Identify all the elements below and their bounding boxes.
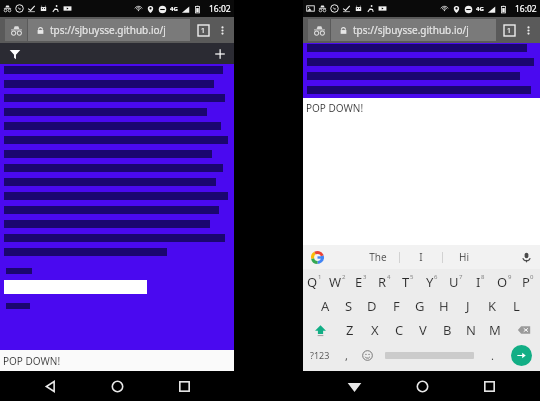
button[interactable]: I bbox=[400, 245, 442, 269]
staticText: N bbox=[466, 321, 476, 339]
staticText: 9 bbox=[508, 273, 512, 281]
button[interactable]: N bbox=[459, 318, 483, 342]
button[interactable]: Hide keyboard bbox=[337, 371, 371, 401]
staticText: 4G bbox=[476, 5, 484, 13]
staticText: V bbox=[419, 321, 427, 339]
button[interactable]: Home bbox=[405, 371, 439, 401]
staticText: E bbox=[355, 273, 363, 291]
button[interactable]: . bbox=[481, 342, 503, 368]
button[interactable]: G bbox=[408, 294, 432, 318]
button[interactable]: T bbox=[396, 269, 420, 294]
staticText: D bbox=[367, 297, 377, 315]
staticText: I bbox=[419, 250, 423, 264]
button[interactable]: H bbox=[432, 294, 456, 318]
staticText: Hi bbox=[459, 250, 469, 264]
staticText: POP DOWN! bbox=[306, 101, 364, 115]
button[interactable]: Back bbox=[33, 371, 67, 401]
staticText: Z bbox=[346, 321, 354, 339]
staticText: S bbox=[345, 297, 353, 315]
button[interactable]: E bbox=[349, 269, 372, 294]
button[interactable]: Emoji bbox=[356, 342, 378, 368]
button[interactable]: POP DOWN! bbox=[0, 350, 234, 371]
button[interactable]: W bbox=[326, 269, 349, 294]
button[interactable]: Google bbox=[309, 249, 325, 265]
staticText: U bbox=[449, 273, 459, 291]
button[interactable]: Shift bbox=[303, 318, 337, 342]
button[interactable]: Tabs bbox=[193, 20, 213, 40]
staticText: 16:02 bbox=[209, 3, 231, 15]
button[interactable]: K bbox=[480, 294, 504, 318]
staticText: 5 bbox=[410, 273, 414, 281]
staticText: 2 bbox=[342, 273, 346, 281]
staticText: B bbox=[443, 321, 452, 339]
button[interactable]: Add bbox=[211, 45, 228, 62]
button[interactable]: F bbox=[384, 294, 408, 318]
button[interactable]: B bbox=[435, 318, 459, 342]
staticText: 8 bbox=[481, 273, 485, 281]
staticText: K bbox=[488, 297, 497, 315]
staticText: Y bbox=[426, 273, 434, 291]
staticText: . bbox=[491, 348, 494, 363]
staticText: A bbox=[321, 297, 330, 315]
button[interactable]: Incognito bbox=[5, 19, 27, 41]
staticText: 4G bbox=[170, 5, 178, 13]
button[interactable]: I bbox=[468, 269, 492, 294]
button[interactable]: Recent apps bbox=[167, 371, 201, 401]
button[interactable]: M bbox=[483, 318, 507, 342]
staticText: 3 bbox=[363, 273, 367, 281]
button[interactable]: More options bbox=[519, 21, 537, 39]
button[interactable]: U bbox=[444, 269, 468, 294]
staticText: W bbox=[329, 273, 342, 291]
button[interactable]: L bbox=[504, 294, 528, 318]
button[interactable]: C bbox=[387, 318, 411, 342]
button[interactable]: P bbox=[516, 269, 540, 294]
staticText: P bbox=[522, 273, 530, 291]
button[interactable]: R bbox=[372, 269, 396, 294]
button[interactable]: Filter bbox=[6, 45, 23, 62]
button[interactable]: More options bbox=[213, 21, 231, 39]
button[interactable]: V bbox=[411, 318, 435, 342]
button[interactable]: Z bbox=[337, 318, 362, 342]
staticText: I bbox=[476, 273, 481, 291]
staticText: ?123 bbox=[310, 349, 330, 361]
button[interactable]: D bbox=[360, 294, 384, 318]
staticText: 6 bbox=[434, 273, 438, 281]
staticText: R bbox=[378, 273, 387, 291]
staticText: O bbox=[497, 273, 508, 291]
button[interactable]: Tabs bbox=[499, 20, 519, 40]
staticText: L bbox=[513, 297, 520, 315]
button[interactable]: tps://sjbuysse.github.io/j bbox=[331, 19, 496, 41]
staticText: The bbox=[369, 250, 387, 264]
button[interactable]: Q bbox=[303, 269, 326, 294]
button[interactable]: Space bbox=[378, 342, 481, 368]
staticText: 1 bbox=[507, 26, 512, 36]
staticText: 1 bbox=[201, 26, 206, 36]
staticText: F bbox=[393, 297, 400, 315]
button[interactable]: Y bbox=[420, 269, 444, 294]
button[interactable]: Voice input bbox=[518, 249, 534, 265]
button[interactable]: J bbox=[456, 294, 480, 318]
button[interactable]: Hi bbox=[443, 245, 485, 269]
button[interactable]: S bbox=[337, 294, 360, 318]
button[interactable]: POP DOWN! bbox=[303, 98, 540, 118]
button[interactable]: A bbox=[314, 294, 337, 318]
staticText: C bbox=[395, 321, 404, 339]
button[interactable]: ?123 bbox=[303, 342, 336, 368]
staticText: X bbox=[371, 321, 379, 339]
button[interactable]: Home bbox=[100, 371, 134, 401]
button[interactable]: Incognito bbox=[308, 19, 330, 41]
button[interactable]: O bbox=[492, 269, 516, 294]
button[interactable]: X bbox=[362, 318, 387, 342]
staticText: T bbox=[402, 273, 410, 291]
button[interactable]: Backspace bbox=[507, 318, 540, 342]
staticText: H bbox=[439, 297, 449, 315]
button[interactable]: Send bbox=[503, 342, 540, 368]
button[interactable]: , bbox=[336, 342, 356, 368]
staticText: POP DOWN! bbox=[3, 354, 61, 368]
staticText: 0 bbox=[530, 273, 534, 281]
button[interactable]: tps://sjbuysse.github.io/j bbox=[28, 19, 190, 41]
button[interactable]: Recent apps bbox=[472, 371, 506, 401]
staticText: , bbox=[345, 348, 348, 363]
button[interactable]: The bbox=[357, 245, 399, 269]
